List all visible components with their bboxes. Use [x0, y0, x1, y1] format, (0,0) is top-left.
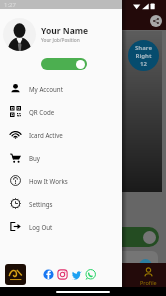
button[interactable]: QR Code — [0, 100, 122, 123]
button[interactable]: Logo — [5, 264, 26, 285]
button[interactable]: Facebook — [43, 269, 54, 280]
button[interactable]: Twitter — [71, 269, 82, 280]
staticText: Your Name — [41, 25, 89, 37]
button[interactable]: Share — [150, 15, 162, 27]
button[interactable]: Profile — [140, 267, 157, 286]
staticText: Share Right 12 — [135, 44, 152, 68]
button[interactable]: How It Works — [0, 169, 122, 192]
staticText: QR Code — [29, 108, 55, 116]
staticText: How It Works — [29, 177, 68, 185]
button[interactable]: My Account — [0, 77, 122, 100]
staticText: Profile — [140, 279, 157, 286]
button[interactable]: Icard Active — [0, 123, 122, 146]
button[interactable]: Settings — [0, 192, 122, 215]
button[interactable]: Log Out — [0, 215, 122, 238]
staticText: Buy — [29, 154, 41, 162]
staticText: My Account — [29, 85, 63, 93]
staticText: Log Out — [29, 223, 53, 231]
staticText: 1:27 — [4, 1, 16, 9]
button[interactable]: Instagram — [57, 269, 68, 280]
button[interactable]: Share Right 12 — [128, 40, 159, 71]
button[interactable]: WhatsApp — [85, 269, 96, 280]
staticText: Your Job/Position — [41, 37, 80, 44]
button[interactable]: Buy — [0, 146, 122, 169]
button[interactable]: Active toggle — [41, 58, 87, 70]
staticText: Icard Active — [29, 131, 63, 139]
staticText: Settings — [29, 200, 53, 208]
